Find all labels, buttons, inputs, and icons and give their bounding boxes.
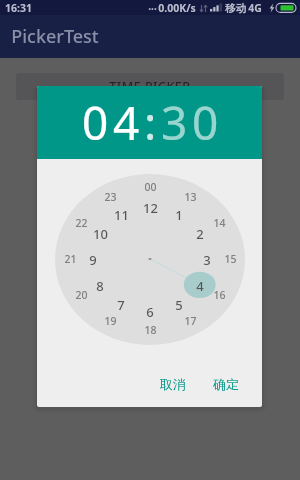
button[interactable]: 确定 — [205, 370, 247, 398]
staticText: PickerTest — [11, 24, 99, 49]
staticText: 00 — [144, 180, 157, 194]
staticText: 取消 — [160, 376, 186, 392]
staticText: : — [144, 91, 161, 154]
staticText: 6 — [146, 303, 154, 319]
staticText: 12 — [143, 199, 158, 215]
staticText: 确定 — [213, 376, 239, 392]
staticText: 21 — [64, 252, 77, 266]
staticText: 9 — [89, 251, 97, 267]
staticText: TIME PICKER — [109, 78, 191, 95]
staticText: 4 — [196, 277, 204, 293]
button[interactable]: 取消 — [152, 370, 194, 398]
staticText: 20 — [75, 288, 88, 302]
staticText: ... — [148, 0, 157, 13]
staticText: 11 — [114, 206, 129, 222]
staticText: 2 — [196, 225, 204, 241]
button[interactable]: 04 — [82, 91, 144, 154]
staticText: 18 — [144, 323, 157, 337]
staticText: 16:31 — [5, 1, 32, 15]
staticText: 15 — [224, 252, 237, 266]
button[interactable]: TIME PICKER — [16, 73, 284, 100]
staticText: 14 — [213, 216, 226, 230]
staticText: 1 — [175, 206, 183, 222]
staticText: 移动 — [225, 2, 246, 15]
staticText: 0.00K/s — [158, 1, 196, 15]
button[interactable]: 30 — [161, 91, 223, 154]
staticText: 10 — [93, 225, 108, 241]
staticText: 13 — [184, 190, 197, 204]
staticText: 23 — [104, 190, 117, 204]
staticText: 8 — [96, 277, 104, 293]
staticText: 16 — [213, 288, 226, 302]
staticText: 4G — [248, 1, 262, 15]
staticText: 5 — [175, 296, 183, 312]
staticText: 17 — [184, 314, 197, 328]
staticText: 7 — [117, 296, 125, 312]
staticText: 22 — [75, 216, 88, 230]
staticText: 19 — [104, 314, 117, 328]
staticText: 3 — [203, 251, 211, 267]
